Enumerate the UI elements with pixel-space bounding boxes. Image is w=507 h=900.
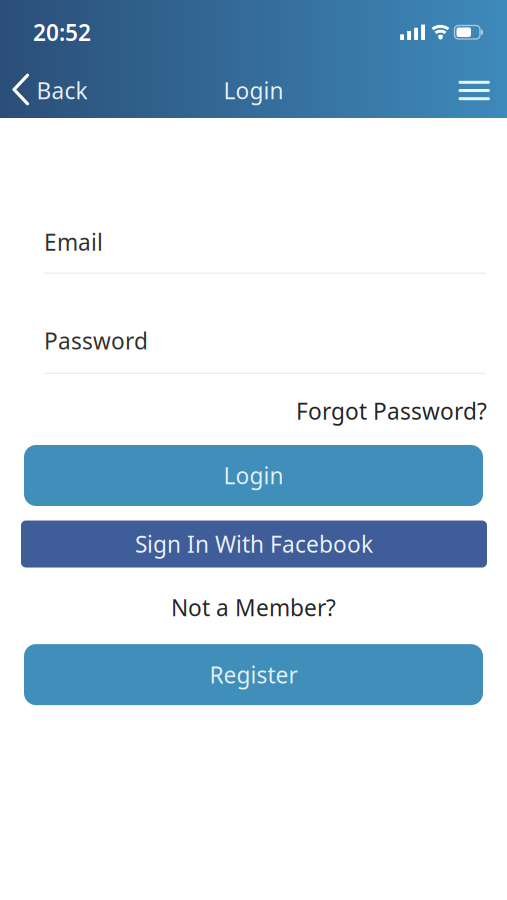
staticText: Back <box>36 75 87 105</box>
staticText: Forgot Password? <box>296 396 487 426</box>
staticText: Password <box>44 326 148 356</box>
button[interactable]: Forgot Password? <box>296 396 487 426</box>
staticText: Email <box>44 227 103 257</box>
button[interactable]: Login <box>24 445 483 506</box>
staticText: Sign In With Facebook <box>135 529 373 559</box>
textField[interactable]: Password <box>44 326 507 356</box>
staticText: Register <box>209 660 297 690</box>
button[interactable]: Back <box>0 75 87 106</box>
staticText: Login <box>223 460 283 491</box>
staticText: Login <box>223 75 283 105</box>
staticText: 20:52 <box>33 17 91 47</box>
button[interactable]: Menu <box>458 81 507 100</box>
button[interactable]: Register <box>24 644 483 705</box>
textField[interactable]: Email <box>44 227 507 257</box>
staticText: Not a Member? <box>171 592 336 623</box>
button[interactable]: Sign In With Facebook <box>21 520 487 567</box>
